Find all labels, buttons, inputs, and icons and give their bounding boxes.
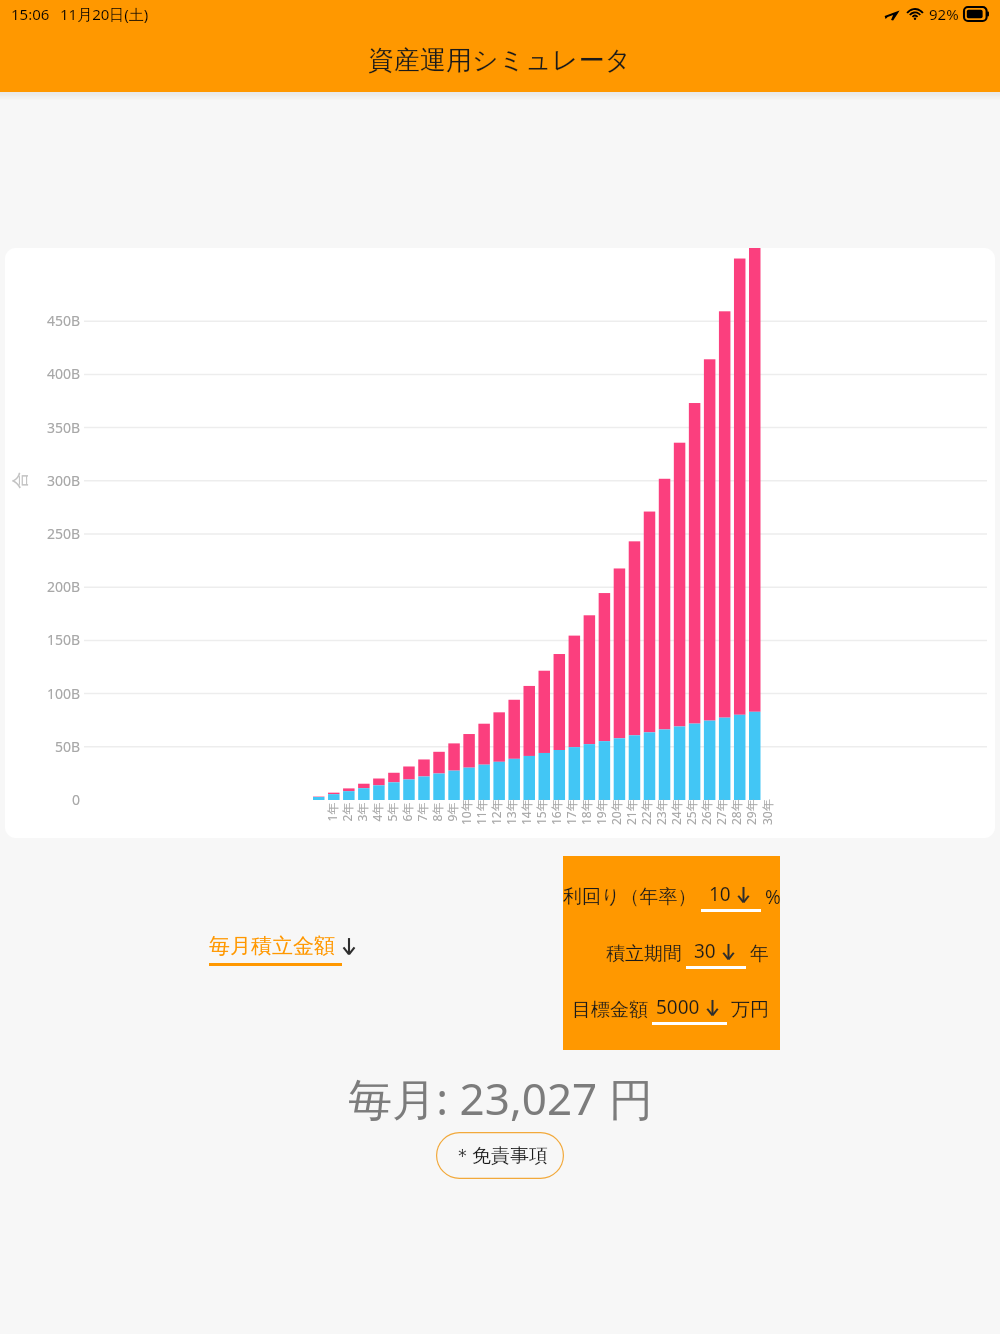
staticText: 450B — [47, 311, 81, 330]
staticText: 積立期間 — [606, 942, 682, 966]
staticText: 0 — [72, 790, 81, 809]
staticText: 年 — [750, 942, 769, 966]
staticText: 20年 — [608, 799, 624, 825]
staticText: 25年 — [683, 799, 699, 825]
staticText: 21年 — [623, 799, 639, 825]
staticText: ＊免責事項 — [453, 1144, 548, 1168]
staticText: 1年 — [323, 802, 339, 821]
staticText: 14年 — [518, 799, 534, 825]
staticText: 30 — [694, 938, 716, 964]
staticText: 15:06 — [11, 4, 50, 24]
staticText: 30年 — [759, 799, 775, 825]
staticText: 合計金額 — [9, 458, 30, 488]
staticText: 目標金額 — [572, 998, 648, 1022]
button[interactable]: 目標金額 — [572, 994, 769, 1025]
staticText: 100B — [47, 684, 81, 703]
staticText: 300B — [47, 471, 81, 490]
button[interactable]: ＊免責事項 — [436, 1132, 564, 1179]
staticText: 5000 — [656, 994, 700, 1020]
staticText: 11年 — [473, 799, 489, 825]
staticText: 5年 — [383, 802, 399, 821]
staticText: 10年 — [458, 799, 474, 825]
staticText: 11月20日(土) — [60, 4, 149, 24]
staticText: 2年 — [338, 802, 354, 821]
button[interactable]: 利回り（年率） — [563, 881, 769, 912]
staticText: 250B — [47, 524, 81, 543]
staticText: 13年 — [503, 799, 519, 825]
staticText: % — [765, 884, 769, 910]
staticText: 4年 — [368, 802, 384, 821]
staticText: 29年 — [743, 799, 759, 825]
staticText: 9年 — [443, 802, 459, 821]
staticText: 50B — [55, 737, 81, 756]
staticText: 10 — [709, 881, 731, 907]
staticText: 7年 — [413, 802, 429, 821]
staticText: 15年 — [533, 799, 549, 825]
staticText: 150B — [47, 630, 81, 649]
staticText: 22年 — [638, 799, 654, 825]
staticText: 28年 — [728, 799, 744, 825]
staticText: 23年 — [653, 799, 669, 825]
staticText: 27年 — [713, 799, 729, 825]
staticText: 26年 — [698, 799, 714, 825]
staticText: 毎月積立金額 — [209, 933, 335, 959]
staticText: 400B — [47, 364, 81, 383]
staticText: 万円 — [731, 998, 769, 1022]
staticText: 350B — [47, 418, 81, 437]
staticText: 8年 — [428, 802, 444, 821]
staticText: 資産運用シミュレータ — [368, 44, 632, 77]
staticText: 利回り（年率） — [563, 885, 697, 909]
staticText: 24年 — [668, 799, 684, 825]
staticText: 3年 — [353, 802, 369, 821]
staticText: 6年 — [398, 802, 414, 821]
button[interactable]: 積立期間 — [606, 938, 769, 969]
staticText: 12年 — [488, 799, 504, 825]
staticText: 16年 — [548, 799, 564, 825]
staticText: 18年 — [578, 799, 594, 825]
button[interactable]: 毎月積立金額 — [209, 933, 360, 966]
staticText: 200B — [47, 577, 81, 596]
staticText: 92% — [929, 4, 959, 24]
staticText: 毎月: 23,027 円 — [348, 1068, 653, 1128]
staticText: 17年 — [563, 799, 579, 825]
staticText: 19年 — [593, 799, 609, 825]
